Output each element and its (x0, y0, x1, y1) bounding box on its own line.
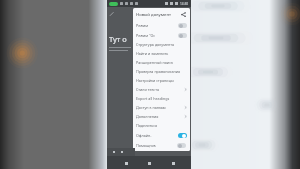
staticText: 14:30 (180, 2, 189, 6)
staticText: Расширенный поиск (136, 60, 173, 65)
button[interactable]: Recents (121, 158, 131, 168)
button[interactable]: Найти и заменить (133, 49, 190, 58)
staticText: Дополнения (136, 114, 159, 119)
staticText: Export all headings (136, 96, 170, 101)
staticText: Стили текста (136, 87, 159, 92)
staticText: Проверка правописания (136, 69, 181, 74)
staticText: Тут о (109, 34, 127, 44)
staticText: Структура документа (136, 42, 175, 47)
staticText: Офлайн-доступ (136, 133, 157, 138)
staticText: Режим просмотра (136, 23, 157, 28)
button[interactable]: Режим просмотра (133, 20, 190, 30)
button[interactable]: Настройки страницы (133, 76, 190, 85)
staticText: Поделиться (136, 123, 158, 128)
button[interactable]: Home (144, 158, 154, 168)
button[interactable]: Дополнения (133, 112, 190, 121)
button[interactable]: Поделиться (133, 121, 190, 130)
staticText: Новый документ (136, 12, 172, 18)
button[interactable]: Back (168, 158, 178, 168)
staticText: Режим "Осмысления" (136, 33, 157, 38)
button[interactable]: Стили текста (133, 85, 190, 94)
button[interactable]: Структура документа (133, 40, 190, 49)
button[interactable]: Export all headings (133, 94, 190, 103)
staticText: Доступ к папкам (136, 105, 166, 110)
button[interactable]: Share (180, 11, 187, 18)
staticText: Настройки страницы (136, 78, 174, 83)
staticText: Помощник (136, 143, 156, 148)
button[interactable]: Офлайн-доступ (133, 130, 190, 140)
staticText: Найти и заменить (136, 51, 169, 56)
button[interactable]: Проверка правописания (133, 67, 190, 76)
button[interactable]: Помощник (133, 140, 190, 150)
button[interactable]: Расширенный поиск (133, 58, 190, 67)
button[interactable]: Новый документ (133, 9, 190, 20)
button[interactable]: Доступ к папкам (133, 103, 190, 112)
button[interactable]: Режим "Осмысления" (133, 30, 190, 40)
